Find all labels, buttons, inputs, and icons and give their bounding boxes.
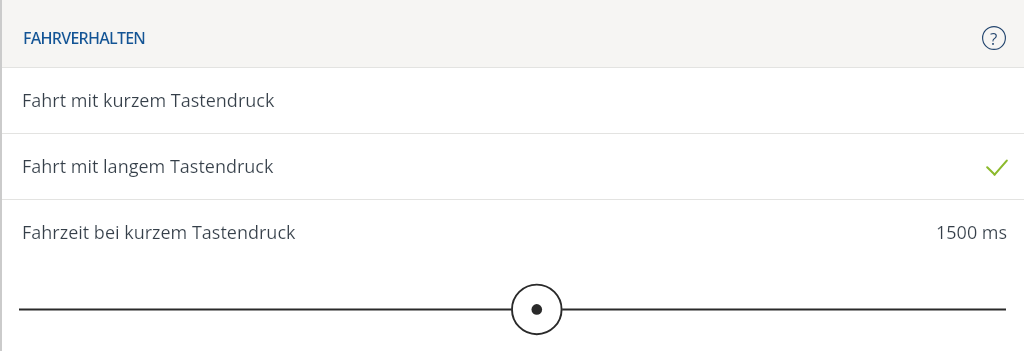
staticText: Fahrzeit bei kurzem Tastendruck [22, 220, 296, 245]
button[interactable]: Fahrt mit kurzem Tastendruck [0, 68, 1024, 133]
button[interactable]: Fahrzeit bei kurzem Tastendruck [0, 200, 1024, 265]
button[interactable]: Fahrzeit slider [0, 265, 1024, 351]
staticText: Fahrt mit kurzem Tastendruck [22, 88, 275, 113]
staticText: 1500 ms [936, 220, 1008, 245]
staticText: FAHRVERHALTEN [23, 27, 146, 49]
staticText: Fahrt mit langem Tastendruck [22, 154, 274, 179]
button[interactable]: Help [972, 16, 1016, 60]
staticText: ? [990, 27, 998, 50]
button[interactable]: Fahrt mit langem Tastendruck [0, 134, 1024, 199]
